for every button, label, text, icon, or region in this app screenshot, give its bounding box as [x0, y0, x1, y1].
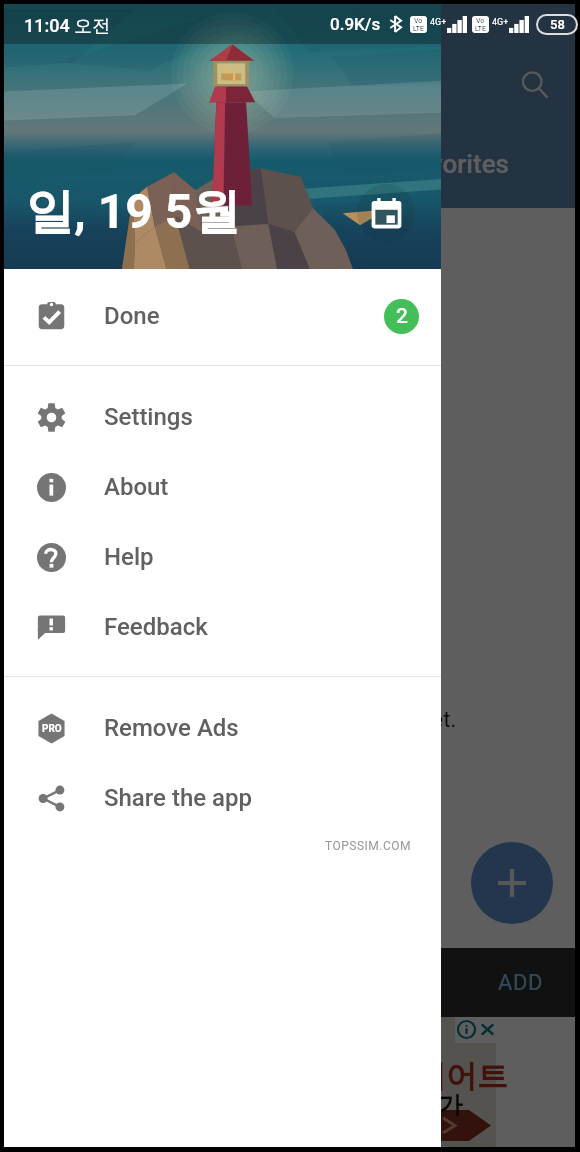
staticText: Feedback: [104, 613, 208, 641]
staticText: ADD: [498, 970, 544, 996]
staticText: 헤어다이어트: [322, 1057, 508, 1096]
button[interactable]: ADD: [4, 948, 575, 1017]
staticText: Help: [104, 543, 154, 571]
button[interactable]: Settings: [4, 382, 441, 452]
button[interactable]: Done: [4, 281, 441, 351]
button[interactable]: Feedback: [4, 592, 441, 662]
staticText: Vo: [414, 17, 423, 25]
staticText: TOPSSIM.COM: [325, 839, 412, 853]
staticText: Favorites: [402, 149, 509, 179]
staticText: LTE: [413, 25, 424, 33]
staticText: 일, 19 5월: [26, 182, 241, 242]
staticText: 58: [550, 17, 565, 32]
staticText: Done: [104, 302, 160, 330]
staticText: 0.9K/s: [330, 14, 381, 34]
staticText: About: [104, 473, 169, 501]
button[interactable]: Add item: [471, 842, 553, 924]
staticText: 2: [396, 304, 408, 329]
staticText: 4G+: [430, 17, 447, 28]
staticText: 사용법 추가: [336, 1087, 463, 1120]
button[interactable]: Calendar: [357, 184, 415, 242]
button[interactable]: About: [4, 452, 441, 522]
button[interactable]: Share the app: [4, 763, 441, 833]
button[interactable]: Search: [511, 61, 559, 109]
staticText: You have no favorites yet.: [206, 707, 457, 733]
staticText: Settings: [104, 403, 193, 431]
staticText: Remove Ads: [104, 714, 239, 742]
staticText: PRO: [42, 723, 62, 735]
button[interactable]: PRO: [4, 693, 441, 763]
staticText: 4G+: [492, 17, 509, 28]
staticText: LTE: [475, 25, 486, 33]
button[interactable]: Help: [4, 522, 441, 592]
staticText: Vo: [476, 17, 485, 25]
staticText: Share the app: [104, 784, 252, 812]
staticText: 11:04 오전: [24, 15, 111, 38]
